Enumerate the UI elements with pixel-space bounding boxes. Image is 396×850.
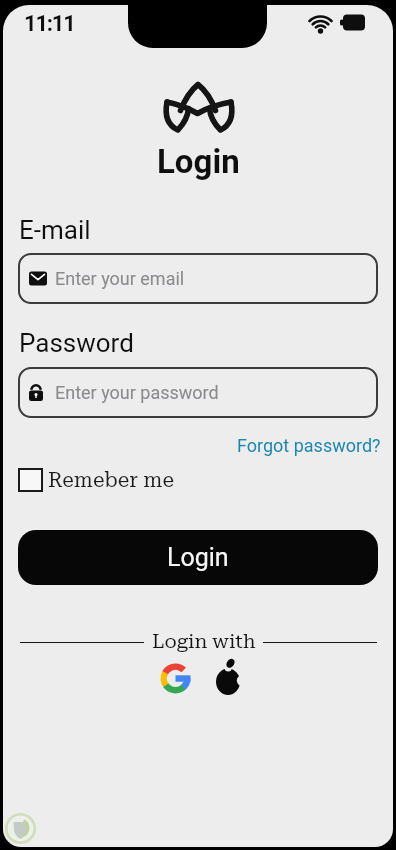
staticText: Password — [19, 328, 134, 358]
staticText: Forgot password? — [237, 435, 381, 456]
button[interactable]: Login — [18, 530, 378, 585]
button[interactable]: Enter your email — [18, 253, 378, 304]
button[interactable]: Remeber me — [18, 463, 174, 497]
button[interactable] — [214, 658, 242, 696]
staticText: Login — [167, 543, 229, 572]
button[interactable]: Forgot password? — [237, 435, 381, 456]
button[interactable] — [160, 663, 191, 694]
staticText: Remeber me — [48, 468, 174, 493]
staticText: Login with — [152, 629, 256, 652]
staticText: 11:11 — [24, 11, 75, 37]
staticText: Enter your email — [55, 268, 185, 289]
button[interactable]: Enter your password — [18, 367, 378, 418]
staticText: Enter your password — [55, 382, 219, 403]
staticText: E-mail — [19, 215, 91, 245]
staticText: Login — [157, 142, 240, 180]
